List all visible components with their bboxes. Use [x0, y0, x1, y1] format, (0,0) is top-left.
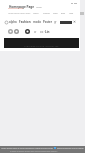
staticText: Store: [53, 12, 58, 15]
staticText: w: [34, 30, 37, 34]
staticText: Blog: [61, 12, 66, 15]
staticText: ✕: [73, 20, 77, 24]
staticText: eiusmod tempor incid ut labore: [57, 147, 84, 149]
staticText: Poster: [43, 20, 53, 24]
staticText: About: [33, 12, 39, 15]
staticText: alpha: [9, 20, 17, 24]
staticText: Lorem ipsum dolor sitam: [8, 12, 31, 15]
staticText: co: [40, 30, 44, 34]
staticText: SUBSCRIBE TO OUR NEWSLETTER: [24, 45, 59, 48]
staticText: Lorem ipsum dolor sit amet consectetur a…: [1, 147, 53, 149]
staticText: Contact: [43, 12, 50, 15]
staticText: Lin: [45, 30, 50, 34]
button[interactable]: SUBSCRIBE TO OUR NEWSLETTER: [4, 38, 79, 48]
staticText: ·: [44, 30, 45, 34]
staticText: ut enim ad minim veniam quis nostrud exe…: [10, 150, 58, 152]
button[interactable]: Homepage Page: [9, 5, 42, 9]
staticText: gr: [54, 20, 57, 24]
staticText: Homepage Page: [9, 5, 35, 9]
staticText: Help: [69, 12, 74, 15]
staticText: moda: [33, 20, 41, 24]
staticText: Fashion: [19, 20, 31, 24]
staticText: Home: [36, 6, 42, 9]
